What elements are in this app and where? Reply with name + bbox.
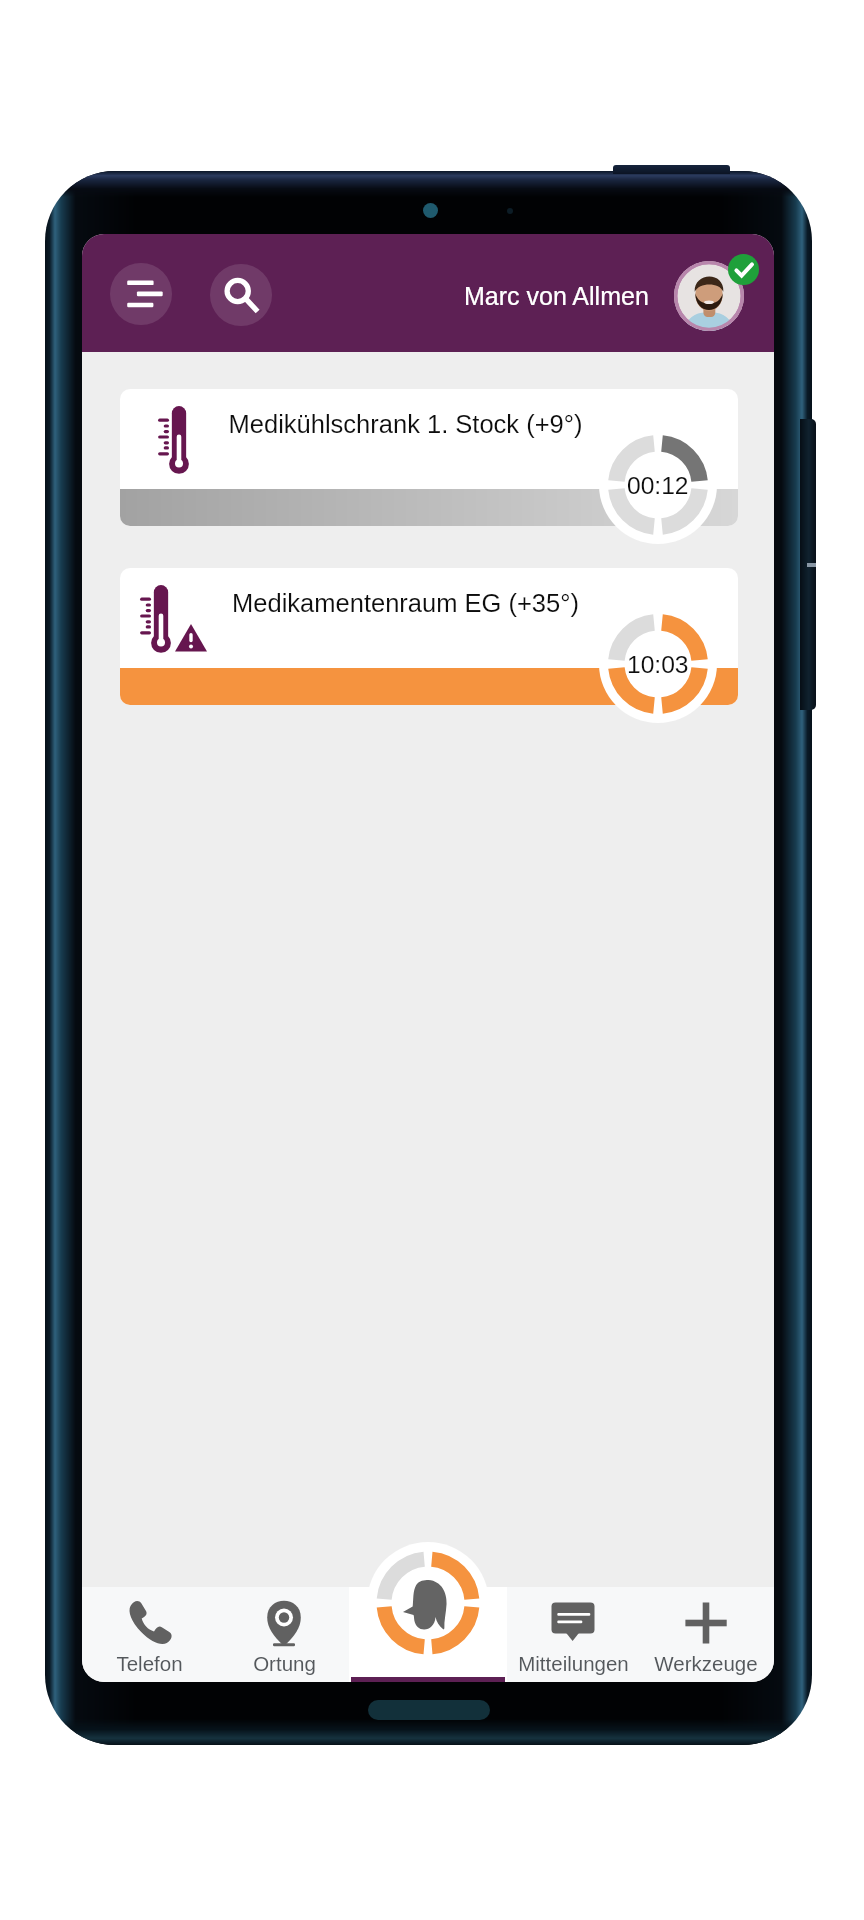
button[interactable]: Menu	[110, 263, 172, 325]
button[interactable]: Profile	[674, 261, 744, 331]
button[interactable]: Werkzeuge	[641, 1587, 771, 1682]
staticText: Werkzeuge	[654, 1652, 758, 1675]
button[interactable]: Mitteilungen	[508, 1587, 638, 1682]
staticText: Telefon	[116, 1652, 183, 1675]
button[interactable]: Medikühlschrank 1. Stock (+9°)	[120, 389, 738, 526]
staticText: Medikühlschrank 1. Stock (+9°)	[144, 410, 667, 438]
staticText: Ortung	[253, 1652, 316, 1675]
button[interactable]: Search	[210, 264, 272, 326]
button[interactable]: Ortung	[219, 1587, 349, 1682]
button[interactable]: Telefon	[84, 1587, 214, 1682]
staticText: Medikamentenraum EG (+35°)	[144, 589, 667, 617]
button[interactable]: Medikamentenraum EG (+35°)	[120, 568, 738, 705]
staticText: Mitteilungen	[518, 1652, 629, 1675]
staticText: 10:03	[627, 651, 689, 678]
button[interactable]: Alarme	[349, 1587, 507, 1682]
staticText: 00:12	[627, 472, 689, 499]
staticText: Marc von Allmen	[464, 282, 649, 310]
